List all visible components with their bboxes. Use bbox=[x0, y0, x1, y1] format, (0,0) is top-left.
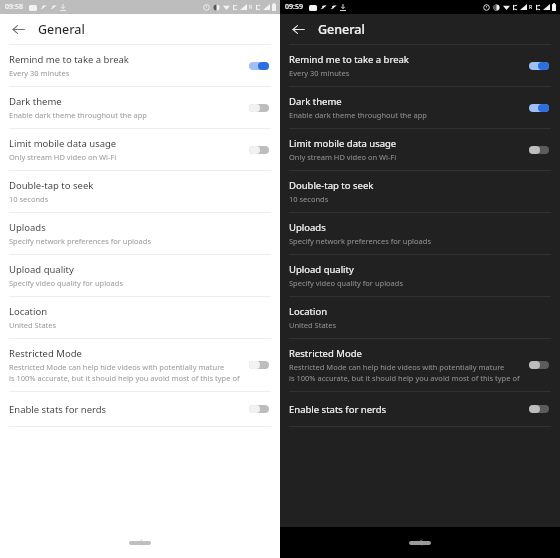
button[interactable]: Off bbox=[526, 141, 552, 159]
staticText: Specify network preferences for uploads bbox=[289, 236, 431, 246]
staticText: Every 30 minutes bbox=[289, 68, 350, 78]
staticText: Double-tap to seek bbox=[9, 179, 94, 192]
staticText: R bbox=[249, 4, 253, 11]
button[interactable]: Enable stats for nerds bbox=[280, 392, 560, 427]
staticText: 09:59 bbox=[285, 2, 303, 12]
button[interactable]: On bbox=[246, 57, 272, 75]
button[interactable]: On bbox=[526, 99, 552, 117]
staticText: is 100% accurate, but it should help you… bbox=[289, 373, 520, 383]
staticText: Location bbox=[289, 305, 328, 318]
button[interactable]: Back bbox=[101, 527, 179, 558]
button[interactable]: Location bbox=[0, 297, 280, 339]
button[interactable]: Limit mobile data usage bbox=[280, 129, 560, 171]
staticText: Double-tap to seek bbox=[289, 179, 374, 192]
staticText: Upload quality bbox=[289, 263, 354, 276]
staticText: Enable dark theme throughout the app bbox=[9, 110, 147, 120]
staticText: Only stream HD video on Wi-Fi bbox=[9, 152, 117, 162]
button[interactable]: Limit mobile data usage bbox=[0, 129, 280, 171]
staticText: Upload quality bbox=[9, 263, 74, 276]
staticText: Enable stats for nerds bbox=[9, 403, 107, 416]
button[interactable]: On bbox=[526, 57, 552, 75]
staticText: 09:58 bbox=[5, 2, 23, 12]
button[interactable]: Remind me to take a break bbox=[280, 45, 560, 87]
staticText: Restricted Mode bbox=[289, 347, 362, 360]
button[interactable]: Back bbox=[381, 527, 459, 558]
button[interactable]: Off bbox=[246, 141, 272, 159]
button[interactable]: Upload quality bbox=[280, 255, 560, 297]
button[interactable]: Restricted Mode bbox=[0, 339, 280, 392]
staticText: United States bbox=[289, 320, 337, 330]
staticText: Specify video quality for uploads bbox=[289, 278, 404, 288]
staticText: Specify video quality for uploads bbox=[9, 278, 124, 288]
button[interactable]: Off bbox=[246, 400, 272, 418]
button[interactable]: Enable stats for nerds bbox=[0, 392, 280, 427]
staticText: Enable stats for nerds bbox=[289, 403, 387, 416]
staticText: Restricted Mode bbox=[9, 347, 82, 360]
button[interactable]: Upload quality bbox=[0, 255, 280, 297]
button[interactable]: Home bbox=[393, 531, 447, 555]
staticText: Uploads bbox=[289, 221, 326, 234]
staticText: 10 seconds bbox=[289, 194, 329, 204]
staticText: Dark theme bbox=[9, 95, 62, 108]
button[interactable]: Off bbox=[246, 356, 272, 374]
staticText: United States bbox=[9, 320, 57, 330]
staticText: General bbox=[318, 21, 365, 38]
button[interactable]: Off bbox=[526, 400, 552, 418]
button[interactable]: Uploads bbox=[280, 213, 560, 255]
staticText: Enable dark theme throughout the app bbox=[289, 110, 427, 120]
staticText: General bbox=[38, 21, 85, 38]
staticText: Specify network preferences for uploads bbox=[9, 236, 151, 246]
staticText: Limit mobile data usage bbox=[9, 137, 117, 150]
staticText: Every 30 minutes bbox=[9, 68, 70, 78]
button[interactable]: Back bbox=[287, 18, 309, 40]
button[interactable]: Dark theme bbox=[0, 87, 280, 129]
button[interactable]: Double-tap to seek bbox=[0, 171, 280, 213]
staticText: is 100% accurate, but it should help you… bbox=[9, 373, 240, 383]
button[interactable]: Location bbox=[280, 297, 560, 339]
staticText: Remind me to take a break bbox=[9, 53, 129, 66]
button[interactable]: Uploads bbox=[0, 213, 280, 255]
staticText: Dark theme bbox=[289, 95, 342, 108]
staticText: Location bbox=[9, 305, 48, 318]
staticText: Limit mobile data usage bbox=[289, 137, 397, 150]
staticText: Restricted Mode can help hide videos wit… bbox=[9, 362, 240, 372]
button[interactable]: Restricted Mode bbox=[280, 339, 560, 392]
button[interactable]: Off bbox=[246, 99, 272, 117]
staticText: R bbox=[529, 4, 533, 11]
staticText: Uploads bbox=[9, 221, 46, 234]
staticText: Only stream HD video on Wi-Fi bbox=[289, 152, 397, 162]
button[interactable]: Off bbox=[526, 356, 552, 374]
staticText: 10 seconds bbox=[9, 194, 49, 204]
staticText: Restricted Mode can help hide videos wit… bbox=[289, 362, 520, 372]
button[interactable]: Remind me to take a break bbox=[0, 45, 280, 87]
button[interactable]: Back bbox=[7, 18, 29, 40]
button[interactable]: Dark theme bbox=[280, 87, 560, 129]
button[interactable]: Home bbox=[113, 531, 167, 555]
staticText: Remind me to take a break bbox=[289, 53, 409, 66]
button[interactable]: Double-tap to seek bbox=[280, 171, 560, 213]
